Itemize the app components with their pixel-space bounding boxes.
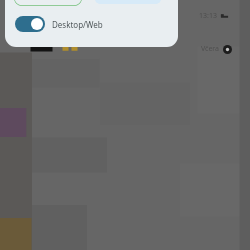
button[interactable] <box>14 0 82 6</box>
button[interactable]: Reply <box>220 12 229 21</box>
staticText: Desktop/Web <box>52 19 103 30</box>
button[interactable]: Desktop/Web <box>5 9 178 39</box>
staticText: 13:13 <box>199 11 217 21</box>
staticText: Včera <box>201 44 220 54</box>
button[interactable]: Seen <box>223 45 232 54</box>
